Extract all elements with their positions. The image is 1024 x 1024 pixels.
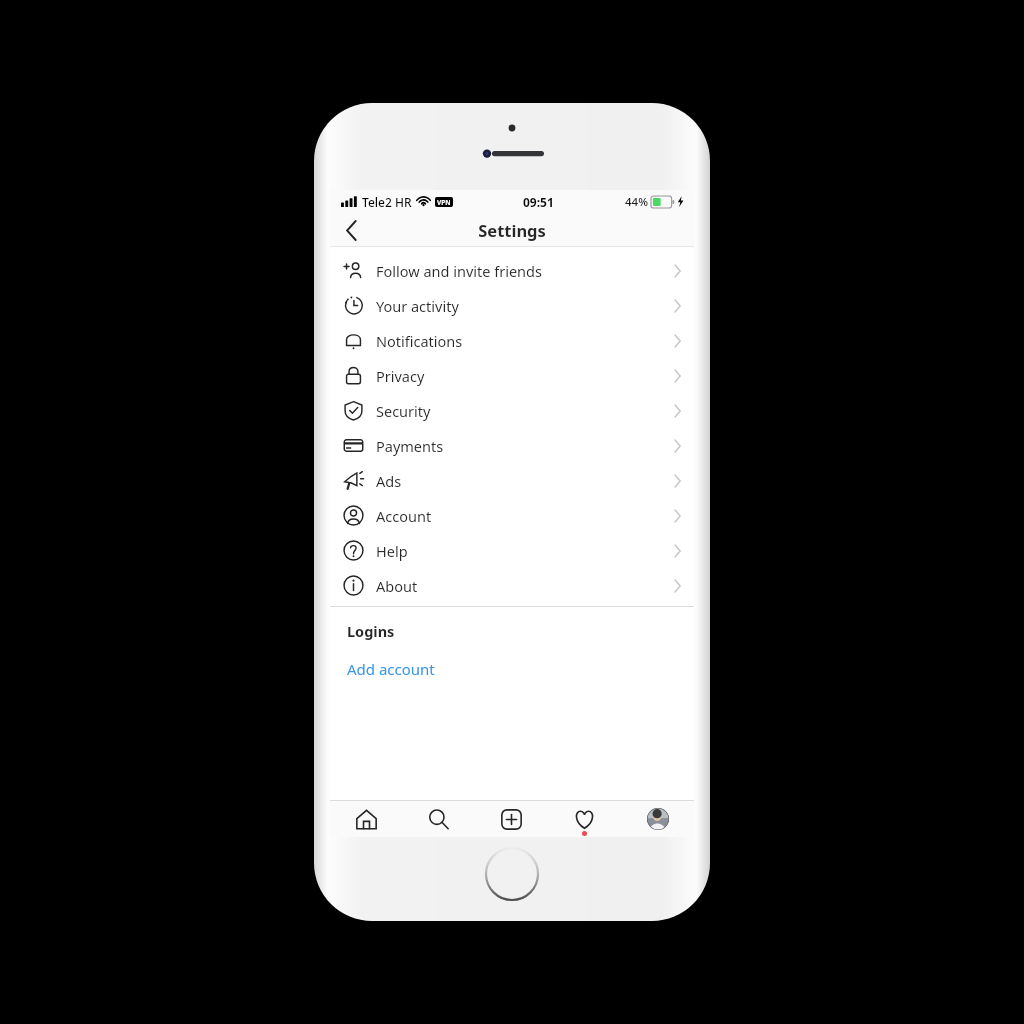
staticText: Tele2 HR <box>362 194 412 210</box>
staticText: About <box>376 576 418 596</box>
staticText: Help <box>376 541 408 561</box>
button[interactable]: Activity <box>548 801 621 837</box>
staticText: Account <box>376 506 432 526</box>
staticText: Privacy <box>376 366 425 386</box>
button[interactable]: Ads <box>330 463 694 498</box>
button[interactable]: Search <box>402 801 475 837</box>
staticText: Security <box>376 401 431 421</box>
button[interactable]: Privacy <box>330 358 694 393</box>
button[interactable]: Back <box>330 213 372 247</box>
button[interactable]: Add account <box>330 659 694 679</box>
staticText: VPN <box>437 198 451 207</box>
button[interactable]: Profile <box>621 801 694 837</box>
staticText: 09:51 <box>523 194 554 210</box>
staticText: Your activity <box>376 296 459 316</box>
staticText: Logins <box>347 621 395 641</box>
button[interactable]: Follow and invite friends <box>330 253 694 288</box>
staticText: Notifications <box>376 331 463 351</box>
button[interactable]: Account <box>330 498 694 533</box>
button[interactable]: Home <box>330 801 402 837</box>
staticText: Settings <box>478 219 546 241</box>
button[interactable]: Help <box>330 533 694 568</box>
staticText: Ads <box>376 471 402 491</box>
staticText: Payments <box>376 436 444 456</box>
button[interactable]: New post <box>475 801 548 837</box>
button[interactable]: Security <box>330 393 694 428</box>
staticText: Follow and invite friends <box>376 261 542 281</box>
button[interactable]: About <box>330 568 694 603</box>
staticText: 44% <box>625 194 648 210</box>
button[interactable]: Notifications <box>330 323 694 358</box>
staticText: Add account <box>347 659 435 679</box>
button[interactable]: Payments <box>330 428 694 463</box>
button[interactable]: Your activity <box>330 288 694 323</box>
